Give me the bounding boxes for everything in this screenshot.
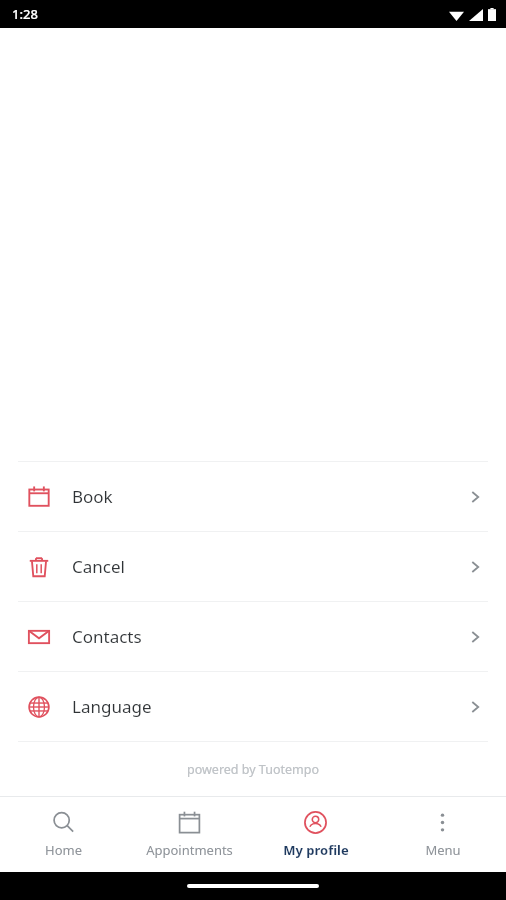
button[interactable]: Menu [379, 797, 506, 872]
staticText: My profile [283, 841, 349, 859]
staticText: Language [72, 695, 152, 718]
button[interactable]: Appointments [126, 797, 252, 872]
button[interactable]: Cancel [0, 532, 506, 601]
button[interactable]: My profile [252, 797, 379, 872]
staticText: Contacts [72, 625, 142, 648]
button[interactable]: Home [0, 797, 126, 872]
button[interactable]: Contacts [0, 602, 506, 671]
staticText: Cancel [72, 555, 125, 578]
staticText: powered by Tuotempo [187, 761, 319, 778]
staticText: Appointments [146, 841, 233, 859]
staticText: Book [72, 485, 113, 508]
staticText: Home [45, 841, 82, 859]
button[interactable]: Language [0, 672, 506, 741]
staticText: 1:28 [12, 5, 38, 23]
staticText: Menu [425, 841, 461, 859]
button[interactable]: Book [0, 462, 506, 531]
